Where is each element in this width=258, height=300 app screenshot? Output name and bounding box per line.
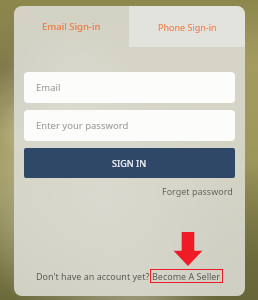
staticText: Forget password [162,185,233,197]
button[interactable]: Become A Seller [150,269,223,283]
button[interactable]: Phone Sign-in [129,6,245,47]
button[interactable]: Email [24,72,235,103]
staticText: Enter your password [36,119,129,132]
staticText: Phone Sign-in [158,21,217,33]
button[interactable]: Enter your password [24,110,235,141]
staticText: Become A Seller [152,270,221,282]
staticText: Email [36,81,61,94]
button[interactable]: Forget password [160,183,235,199]
staticText: SIGN IN [112,157,147,169]
other: Arrow pointing to Become A Seller [173,232,203,266]
staticText: Email Sign-in [42,20,101,33]
staticText: Don't have an account yet? [36,270,150,282]
button[interactable]: SIGN IN [24,148,235,178]
button[interactable]: Email Sign-in [14,6,129,47]
